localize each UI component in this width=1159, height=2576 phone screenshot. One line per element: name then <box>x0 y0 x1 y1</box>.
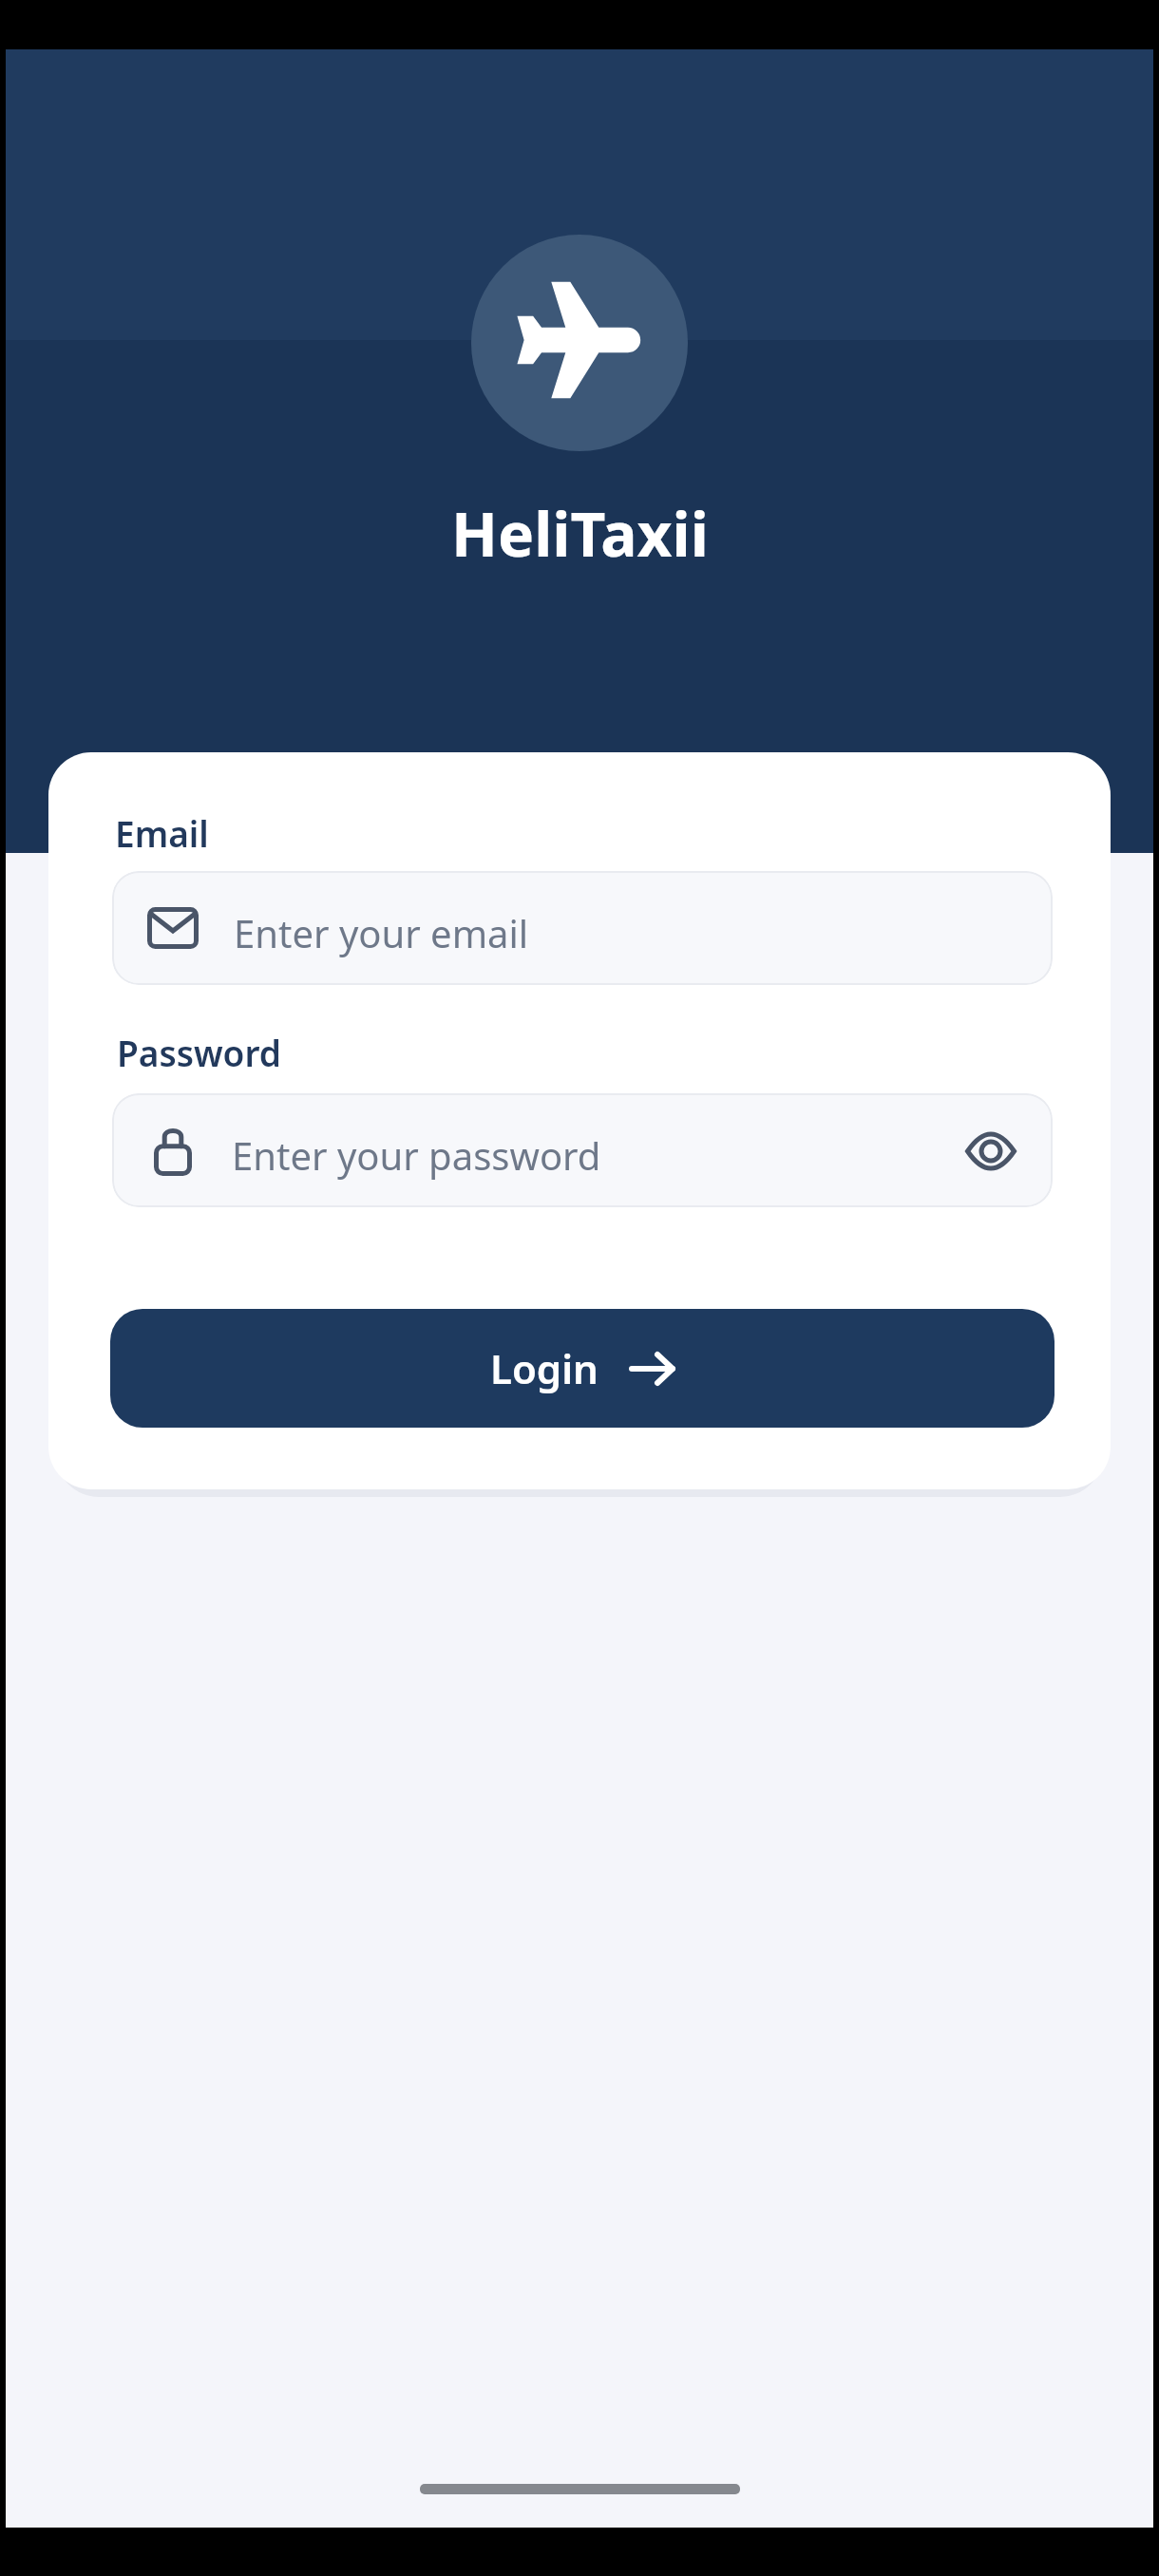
staticText: Email <box>115 809 209 857</box>
staticText: Login <box>490 1341 598 1395</box>
button[interactable]: Enter your password <box>112 1093 1053 1207</box>
button[interactable]: Login <box>110 1309 1054 1428</box>
staticText: Enter your email <box>234 907 529 958</box>
staticText: HeliTaxii <box>451 492 709 575</box>
staticText: Password <box>117 1029 281 1076</box>
button[interactable] <box>965 1133 1016 1169</box>
button[interactable]: Enter your email <box>112 871 1053 985</box>
staticText: Enter your password <box>232 1129 601 1181</box>
